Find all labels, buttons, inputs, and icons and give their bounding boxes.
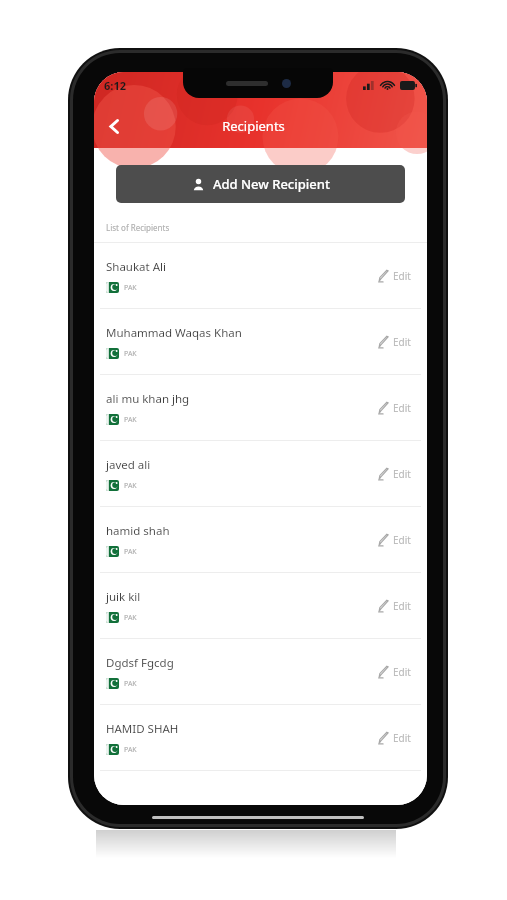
button[interactable]: Edit [374,395,415,421]
staticText: 6:12 [104,78,126,93]
staticText: juik kil [106,589,141,605]
staticText: List of Recipients [106,222,170,233]
staticText: PAK [124,349,137,359]
button[interactable]: Edit [374,263,415,289]
button[interactable]: ali mu khan jhg [94,375,427,440]
button[interactable]: Edit [374,527,415,553]
staticText: PAK [124,745,137,755]
button[interactable]: Add New Recipient [116,165,405,203]
button[interactable]: Dgdsf Fgcdg [94,639,427,704]
button[interactable]: Edit [374,329,415,355]
staticText: Edit [393,401,411,415]
staticText: PAK [124,283,137,293]
staticText: Edit [393,335,411,349]
staticText: Muhammad Waqas Khan [106,325,242,341]
staticText: Edit [393,533,411,547]
staticText: PAK [124,481,137,491]
staticText: Add New Recipient [213,175,330,193]
button[interactable]: Back [94,106,134,146]
button[interactable]: juik kil [94,573,427,638]
staticText: Edit [393,269,411,283]
button[interactable]: Edit [374,593,415,619]
button[interactable]: Shaukat Ali [94,243,427,308]
staticText: javed ali [106,457,151,473]
staticText: ali mu khan jhg [106,391,190,407]
staticText: Edit [393,665,411,679]
staticText: Dgdsf Fgcdg [106,655,174,671]
staticText: PAK [124,415,137,425]
staticText: Shaukat Ali [106,259,166,275]
staticText: Edit [393,467,411,481]
button[interactable]: Edit [374,659,415,685]
button[interactable]: HAMID SHAH [94,705,427,770]
button[interactable]: hamid shah [94,507,427,572]
staticText: Edit [393,599,411,613]
staticText: Edit [393,731,411,745]
button[interactable]: Edit [374,725,415,751]
staticText: PAK [124,613,137,623]
staticText: HAMID SHAH [106,721,179,737]
staticText: PAK [124,547,137,557]
staticText: hamid shah [106,523,170,539]
staticText: Recipients [120,117,387,135]
button[interactable]: javed ali [94,441,427,506]
staticText: PAK [124,679,137,689]
button[interactable]: Edit [374,461,415,487]
button[interactable]: Muhammad Waqas Khan [94,309,427,374]
